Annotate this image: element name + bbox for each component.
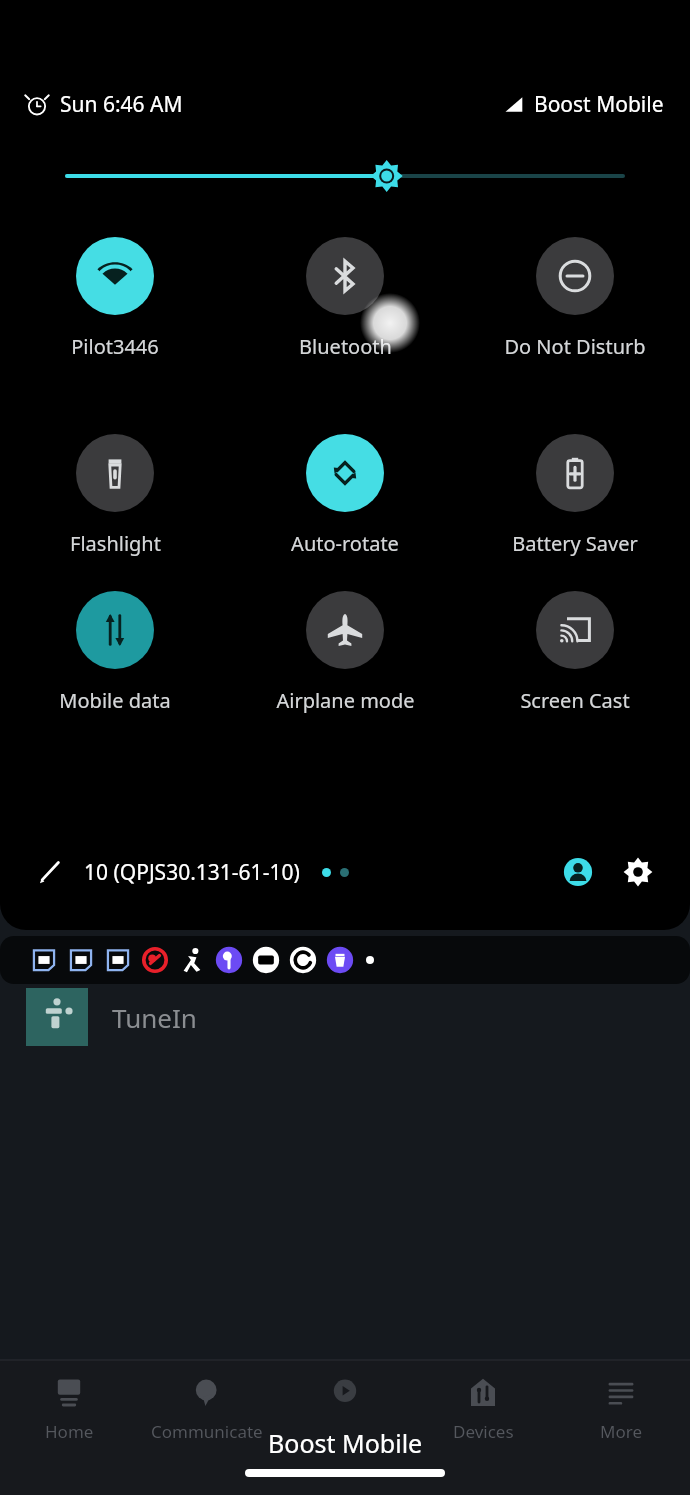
- staticText: Battery Saver: [512, 530, 638, 557]
- staticText: Auto-rotate: [291, 530, 399, 557]
- staticText: Flashlight: [70, 530, 161, 557]
- button[interactable]: [276, 1360, 414, 1420]
- button[interactable]: Flashlight: [0, 434, 230, 557]
- other: Alarm set: [26, 94, 48, 116]
- button[interactable]: Auto-rotate: [230, 434, 460, 557]
- staticText: Mobile data: [59, 687, 171, 714]
- button[interactable]: Mobile data: [0, 591, 230, 714]
- staticText: Bluetooth: [299, 333, 392, 360]
- button[interactable]: Do Not Disturb: [460, 237, 690, 360]
- staticText: Do Not Disturb: [504, 333, 646, 360]
- button[interactable]: Battery Saver: [460, 434, 690, 557]
- staticText: Screen Cast: [520, 687, 630, 714]
- staticText: Home: [45, 1420, 94, 1443]
- button[interactable]: User: [556, 850, 600, 894]
- button[interactable]: Pilot3446: [0, 237, 230, 360]
- staticText: Sun 6:46 AM: [60, 90, 183, 119]
- staticText: 10 (QPJS30.131-61-10): [84, 858, 300, 887]
- staticText: TuneIn: [112, 1000, 197, 1035]
- button[interactable]: Edit tiles: [30, 852, 70, 892]
- button[interactable]: Home: [0, 1360, 138, 1443]
- staticText: Boost Mobile: [268, 1426, 423, 1460]
- staticText: Devices: [453, 1420, 514, 1443]
- staticText: Pilot3446: [71, 333, 159, 360]
- button[interactable]: TuneIn: [0, 988, 690, 1046]
- staticText: Airplane mode: [276, 687, 415, 714]
- button[interactable]: More: [552, 1360, 690, 1443]
- button[interactable]: Settings: [616, 850, 660, 894]
- button[interactable]: Screen Cast: [460, 591, 690, 714]
- staticText: More: [600, 1420, 642, 1443]
- button[interactable]: Devices: [414, 1360, 552, 1443]
- button[interactable]: Bluetooth: [230, 237, 460, 360]
- button[interactable]: Communicate: [138, 1360, 276, 1443]
- button[interactable]: [0, 159, 690, 193]
- staticText: Communicate: [151, 1420, 263, 1443]
- staticText: Boost Mobile: [534, 90, 664, 119]
- button[interactable]: Airplane mode: [230, 591, 460, 714]
- other: Signal strength: [503, 94, 524, 115]
